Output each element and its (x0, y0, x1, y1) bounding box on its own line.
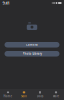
staticText: Home (3, 94, 12, 98)
staticText: Docs (37, 94, 43, 98)
button[interactable]: Scan (16, 89, 32, 100)
staticText: More (52, 94, 59, 98)
staticText: Photo Library (22, 52, 41, 55)
staticText: 9:41 (2, 0, 9, 6)
staticText: Scan (21, 94, 27, 98)
button[interactable]: Home (0, 89, 16, 100)
button[interactable]: Docs (32, 89, 48, 100)
button[interactable]: Camera (4, 42, 59, 47)
button[interactable]: More (48, 89, 64, 100)
button[interactable]: Photo Library (4, 51, 59, 56)
staticText: Camera (26, 43, 38, 46)
